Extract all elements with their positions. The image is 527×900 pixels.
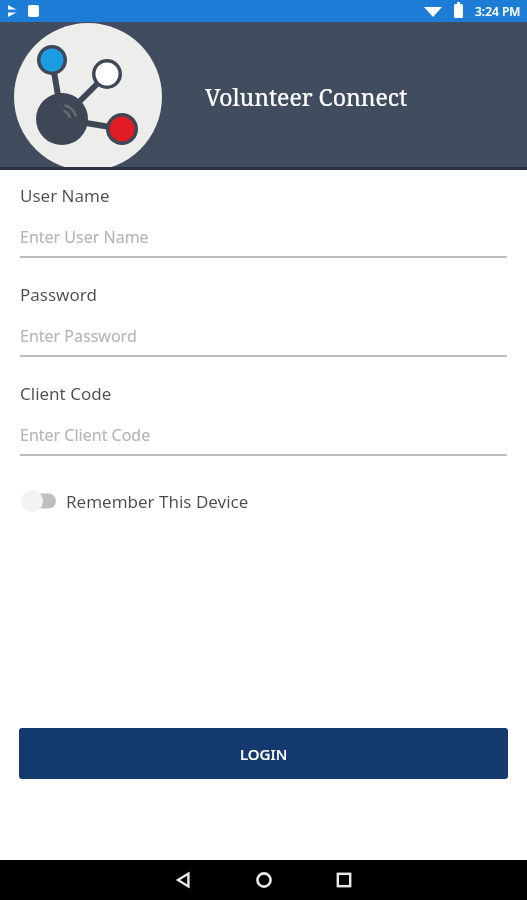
button[interactable]: Home — [232, 860, 296, 900]
staticText: User Name — [20, 184, 110, 207]
button[interactable]: Enter Client Code — [20, 424, 507, 446]
staticText: Enter Client Code — [20, 424, 151, 446]
button[interactable]: Enter User Name — [20, 226, 507, 248]
staticText: Client Code — [20, 382, 112, 405]
staticText: LOGIN — [240, 744, 288, 764]
button[interactable]: Recent apps — [312, 860, 376, 900]
staticText: Volunteer Connect — [205, 81, 408, 112]
button[interactable]: LOGIN — [19, 728, 508, 779]
button[interactable]: Remember This Device — [20, 481, 507, 521]
staticText: 3:24 PM — [475, 3, 521, 19]
staticText: Enter User Name — [20, 226, 149, 248]
button[interactable]: Back — [152, 860, 216, 900]
staticText: Enter Password — [20, 325, 137, 347]
staticText: Password — [20, 283, 97, 306]
staticText: Remember This Device — [66, 490, 249, 513]
button[interactable]: Enter Password — [20, 325, 507, 347]
